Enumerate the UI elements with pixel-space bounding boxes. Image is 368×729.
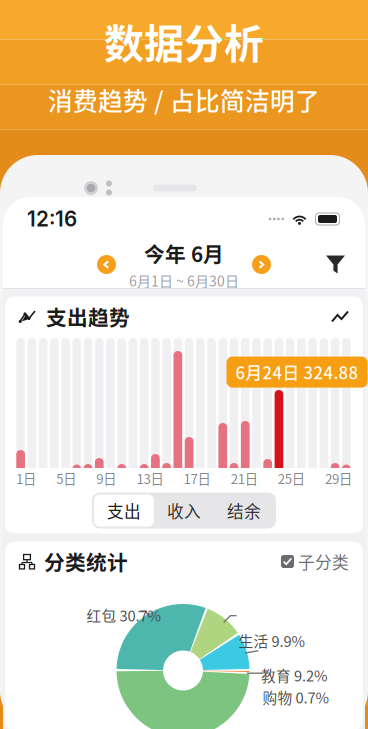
staticText: 收入	[167, 498, 201, 523]
staticText: 6月1日 ~ 6月30日	[129, 270, 239, 291]
button[interactable]: Filter	[318, 249, 353, 279]
button[interactable]: 结余	[214, 494, 274, 527]
button[interactable]: 子分类	[281, 549, 349, 573]
staticText: 1日	[16, 468, 36, 488]
staticText: 生活 9.9%	[238, 630, 305, 651]
staticText: 红包 30.7%	[86, 604, 161, 626]
staticText: 分类统计	[44, 546, 128, 576]
staticText: 29日	[325, 468, 352, 488]
button[interactable]: Next month	[252, 255, 271, 274]
staticText: 21日	[231, 468, 258, 488]
staticText: 5日	[56, 468, 76, 488]
staticText: 子分类	[298, 549, 349, 573]
button[interactable]: 今年 6月	[129, 238, 239, 291]
button[interactable]: 支出	[94, 494, 154, 527]
staticText: 教育 9.2%	[261, 664, 328, 686]
staticText: 25日	[278, 468, 305, 488]
staticText: 6月24日 324.88	[235, 360, 358, 384]
staticText: 9日	[96, 468, 116, 488]
staticText: 今年 6月	[144, 238, 224, 268]
staticText: 支出趋势	[46, 301, 130, 331]
staticText: 17日	[184, 468, 211, 488]
button[interactable]: 收入	[154, 494, 214, 527]
staticText: 支出	[107, 498, 141, 523]
staticText: 数据分析	[104, 12, 264, 70]
button[interactable]: Previous month	[97, 255, 116, 274]
staticText: 购物 0.7%	[262, 686, 329, 708]
staticText: 13日	[136, 468, 163, 488]
staticText: 12:16	[27, 206, 77, 231]
staticText: 消费趋势 / 占比简洁明了	[48, 82, 320, 118]
staticText: 结余	[227, 498, 261, 523]
